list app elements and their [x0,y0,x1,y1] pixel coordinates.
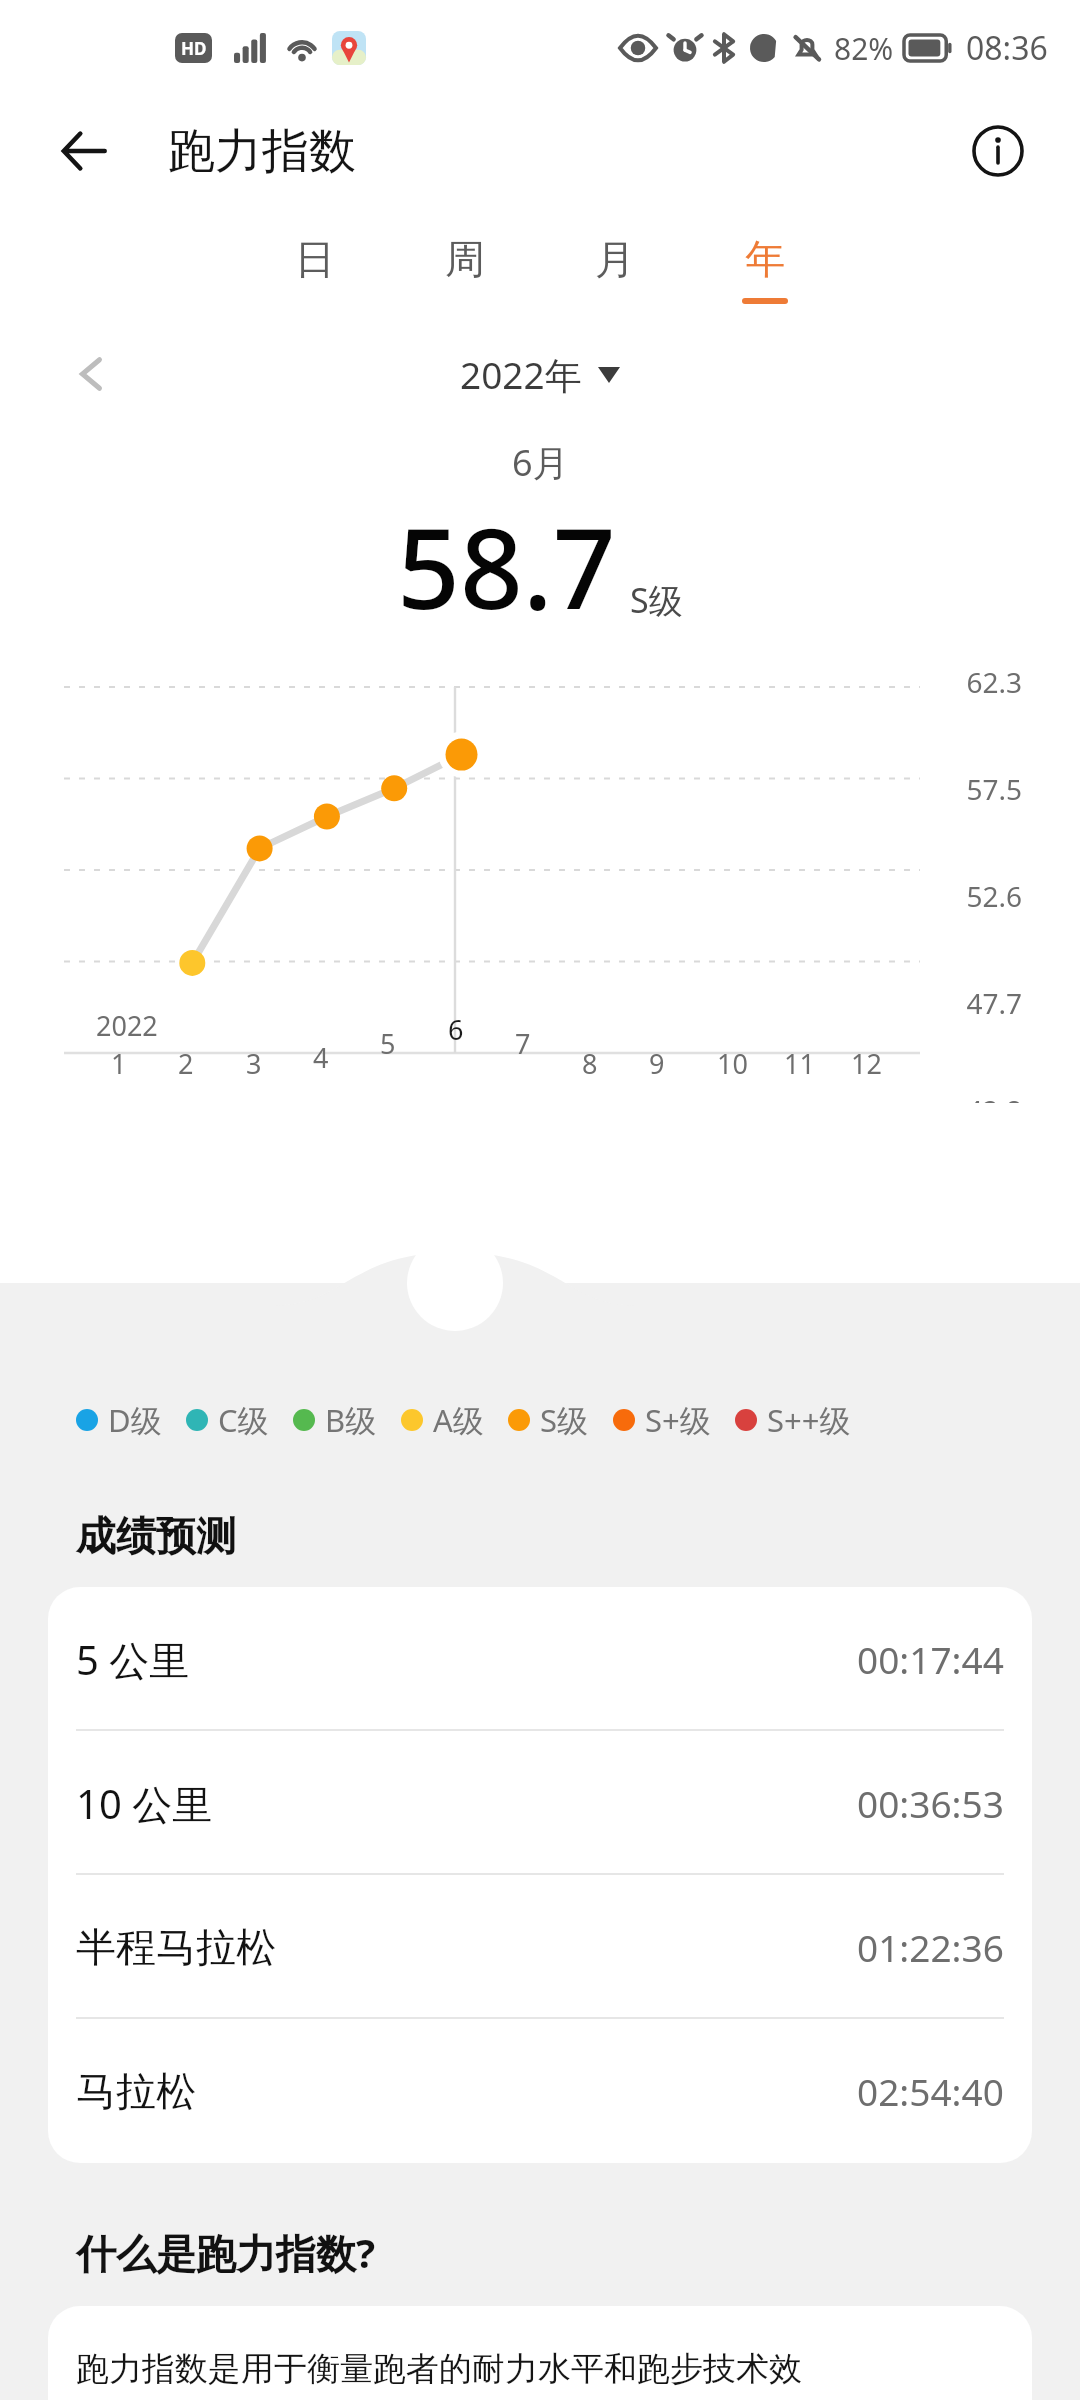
staticText: S级 [630,577,683,623]
staticText: 58.7 [397,491,616,641]
staticText: 5 [380,1025,396,1062]
staticText: 8 [582,1045,598,1082]
staticText: HD [181,37,207,60]
button[interactable]: 年 [730,234,800,304]
staticText: 10 公里 [76,1776,213,1831]
staticText: 00:17:44 [857,1634,1004,1684]
button[interactable]: 5 公里 [48,1587,1032,1731]
button[interactable]: 日 [280,234,350,304]
staticText: 跑力指数是用于衡量跑者的耐力水平和跑步技术效 [76,2348,802,2390]
staticText: 5 公里 [76,1632,190,1687]
staticText: 47.7 [920,984,1022,1022]
staticText: A级 [433,1399,484,1441]
button[interactable]: 半程马拉松 [48,1875,1032,2019]
staticText: 成绩预测 [76,1511,236,1561]
staticText: 12 [851,1045,882,1082]
staticText: S+级 [645,1399,711,1441]
staticText: 年 [745,234,785,284]
button[interactable]: 2022年 [460,349,620,400]
staticText: 52.6 [920,877,1022,915]
staticText: D级 [108,1399,162,1441]
staticText: 半程马拉松 [76,1922,276,1972]
staticText: 1 [111,1045,127,1082]
button[interactable]: 周 [430,234,500,304]
staticText: 02:54:40 [857,2066,1004,2116]
staticText: 08:36 [966,26,1048,70]
staticText: S++级 [767,1399,851,1441]
staticText: 01:22:36 [857,1922,1004,1972]
button[interactable]: Info [960,113,1036,189]
staticText: 42.8 [920,1091,1022,1103]
button[interactable]: 月 [580,234,650,304]
button[interactable]: Back [48,115,120,187]
staticText: C级 [218,1399,269,1441]
staticText: 月 [595,234,635,284]
staticText: 9 [649,1045,665,1082]
staticText: 82% [834,28,894,69]
staticText: 11 [784,1045,815,1082]
staticText: 3 [246,1045,262,1082]
staticText: 62.3 [920,663,1022,701]
staticText: 7 [515,1025,531,1062]
staticText: 周 [445,234,485,284]
staticText: 10 [717,1045,748,1082]
staticText: 2022年 [460,349,582,400]
staticText: 6 [448,1011,464,1048]
staticText: 2022 [96,1007,158,1044]
staticText: 日 [295,234,335,284]
staticText: S级 [540,1399,589,1441]
staticText: 什么是跑力指数? [76,2225,376,2280]
staticText: 00:36:53 [857,1778,1004,1828]
staticText: 6月 [512,438,569,487]
staticText: 2 [178,1045,194,1082]
staticText: 马拉松 [76,2066,196,2116]
staticText: 4 [313,1039,329,1076]
staticText: B级 [325,1399,377,1441]
staticText: 跑力指数 [168,122,356,181]
button[interactable]: 10 公里 [48,1731,1032,1875]
button[interactable]: 马拉松 [48,2019,1032,2163]
button[interactable]: Previous year [60,342,124,406]
staticText: 57.5 [920,770,1022,808]
